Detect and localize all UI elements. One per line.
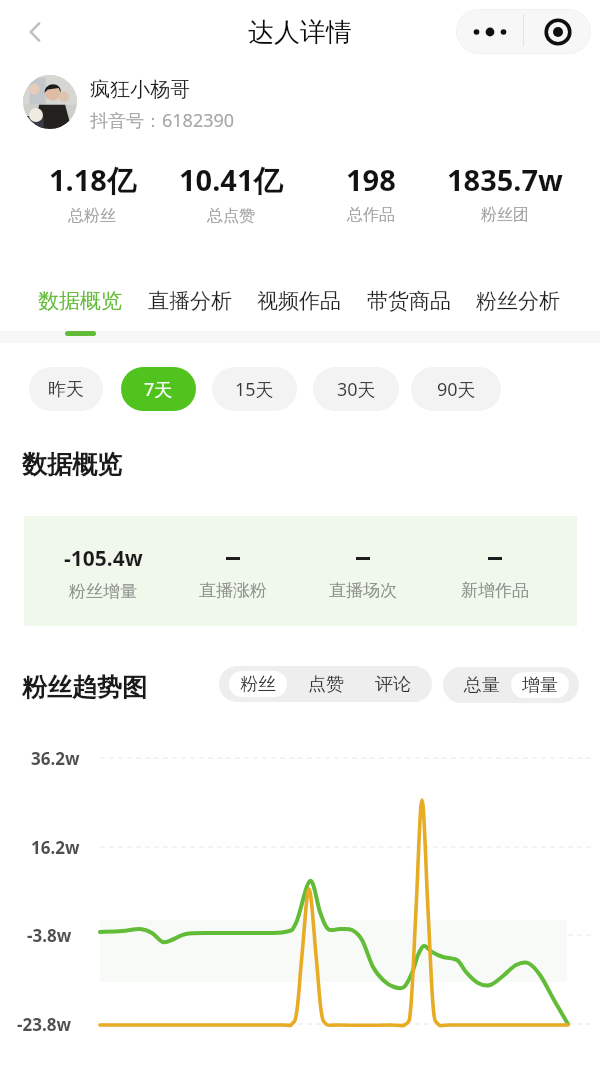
staticText: 粉丝: [240, 673, 276, 696]
staticText: 16.2w: [31, 836, 80, 859]
button[interactable]: 90天: [411, 367, 501, 411]
staticText: 新增作品: [461, 580, 529, 601]
button[interactable]: 30天: [313, 367, 399, 411]
staticText: 总粉丝: [68, 206, 116, 226]
staticText: 粉丝增量: [69, 581, 137, 602]
button[interactable]: 1835.7w: [425, 160, 585, 225]
staticText: 视频作品: [257, 288, 341, 314]
button[interactable]: 10.41亿: [151, 160, 311, 226]
button[interactable]: 疯狂小杨哥: [23, 72, 600, 132]
staticText: 10.41亿: [179, 160, 283, 200]
staticText: 总作品: [347, 205, 395, 225]
button[interactable]: Close: [524, 9, 591, 54]
button[interactable]: 昨天: [29, 367, 103, 411]
staticText: 带货商品: [367, 288, 451, 314]
button[interactable]: 直播场次: [293, 544, 433, 601]
staticText: -3.8w: [27, 924, 72, 947]
button[interactable]: 评论: [364, 671, 422, 697]
staticText: 数据概览: [22, 449, 122, 480]
button[interactable]: 直播涨粉: [163, 544, 303, 601]
button[interactable]: 增量: [511, 672, 569, 698]
button[interactable]: 7天: [121, 367, 196, 411]
button[interactable]: 总量: [453, 672, 511, 698]
button[interactable]: 粉丝: [229, 671, 287, 697]
button[interactable]: 带货商品: [367, 288, 451, 336]
staticText: 15天: [235, 377, 274, 402]
button[interactable]: Back: [12, 9, 58, 55]
staticText: 1835.7w: [447, 160, 563, 199]
staticText: 粉丝团: [481, 205, 529, 225]
staticText: 1.18亿: [49, 160, 136, 200]
button[interactable]: 数据概览: [38, 288, 122, 336]
button[interactable]: 1.18亿: [12, 160, 172, 226]
staticText: 点赞: [308, 673, 344, 696]
staticText: 36.2w: [31, 747, 80, 770]
button[interactable]: More options: [456, 9, 523, 54]
staticText: 评论: [375, 673, 411, 696]
staticText: 直播分析: [148, 288, 232, 314]
staticText: -105.4w: [64, 544, 143, 573]
staticText: 直播场次: [329, 580, 397, 601]
staticText: 粉丝分析: [476, 288, 560, 314]
button[interactable]: 视频作品: [257, 288, 341, 336]
button[interactable]: 粉丝分析: [476, 288, 560, 336]
staticText: 直播涨粉: [199, 580, 267, 601]
staticText: 粉丝趋势图: [22, 672, 147, 703]
staticText: 疯狂小杨哥: [90, 77, 190, 102]
staticText: 增量: [522, 674, 558, 697]
button[interactable]: -105.4w: [33, 544, 173, 602]
staticText: 达人详情: [248, 16, 352, 49]
staticText: -23.8w: [17, 1013, 71, 1036]
button[interactable]: 新增作品: [425, 544, 565, 601]
button[interactable]: 点赞: [297, 671, 355, 697]
staticText: 抖音号：6182390: [90, 108, 235, 133]
staticText: 总量: [464, 674, 500, 697]
staticText: 198: [346, 160, 396, 199]
button[interactable]: 15天: [212, 367, 297, 411]
staticText: 数据概览: [38, 288, 122, 314]
button[interactable]: 198: [291, 160, 451, 225]
staticText: 总点赞: [207, 206, 255, 226]
staticText: 7天: [144, 377, 173, 402]
staticText: 昨天: [48, 378, 84, 401]
staticText: 30天: [337, 377, 376, 402]
staticText: 90天: [437, 377, 476, 402]
button[interactable]: 直播分析: [148, 288, 232, 336]
